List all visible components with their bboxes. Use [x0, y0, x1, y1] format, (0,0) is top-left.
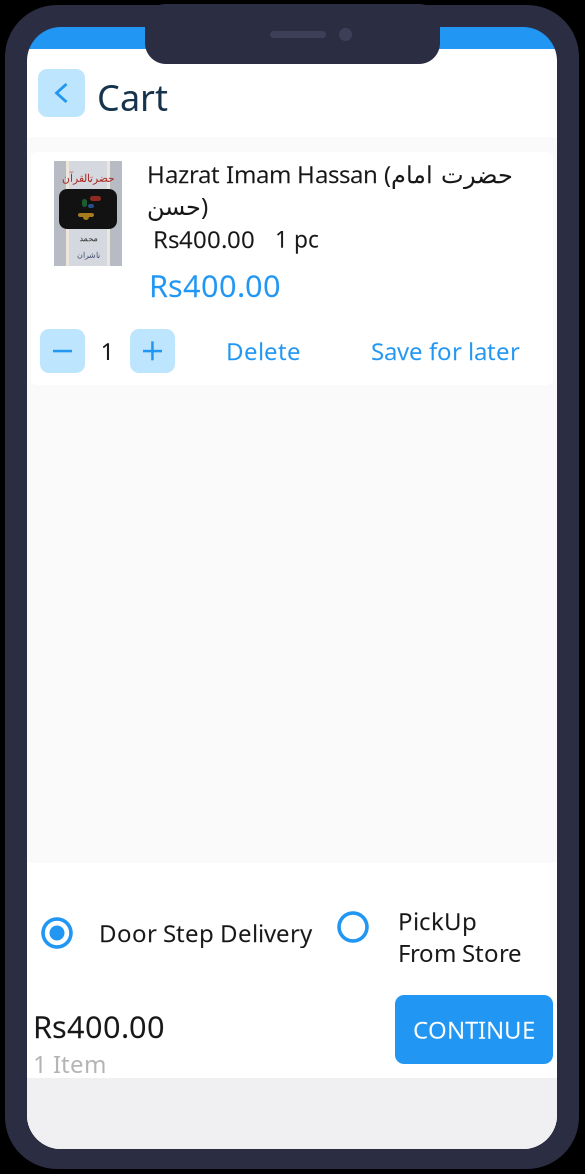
button[interactable]: Save for later: [343, 329, 548, 373]
button[interactable]: Door Step Delivery: [41, 909, 312, 957]
staticText: PickUp From Store: [398, 905, 522, 969]
staticText: 1: [100, 335, 114, 367]
staticText: Door Step Delivery: [99, 917, 312, 949]
button[interactable]: Decrease quantity: [40, 329, 85, 373]
staticText: محمد: [79, 234, 97, 243]
staticText: Cart: [97, 73, 168, 121]
button[interactable]: Increase quantity: [130, 329, 175, 373]
staticText: ناشران: [76, 250, 99, 260]
button[interactable]: Back: [38, 69, 85, 117]
button[interactable]: PickUp From Store: [337, 901, 522, 973]
button[interactable]: Delete: [198, 329, 329, 373]
staticText: Rs400.00: [153, 223, 255, 255]
staticText: 1 Item: [33, 1048, 106, 1080]
staticText: CONTINUE: [413, 1014, 535, 1045]
staticText: Save for later: [371, 335, 520, 367]
staticText: Hazrat Imam Hassan (حضرت امام حسن): [147, 158, 513, 222]
staticText: Delete: [226, 335, 301, 367]
staticText: Rs400.00: [33, 1006, 165, 1047]
button[interactable]: CONTINUE: [395, 995, 553, 1064]
staticText: حضرتالقرآن: [61, 172, 114, 184]
staticText: Rs400.00: [149, 265, 281, 306]
staticText: 1 pc: [275, 224, 319, 254]
